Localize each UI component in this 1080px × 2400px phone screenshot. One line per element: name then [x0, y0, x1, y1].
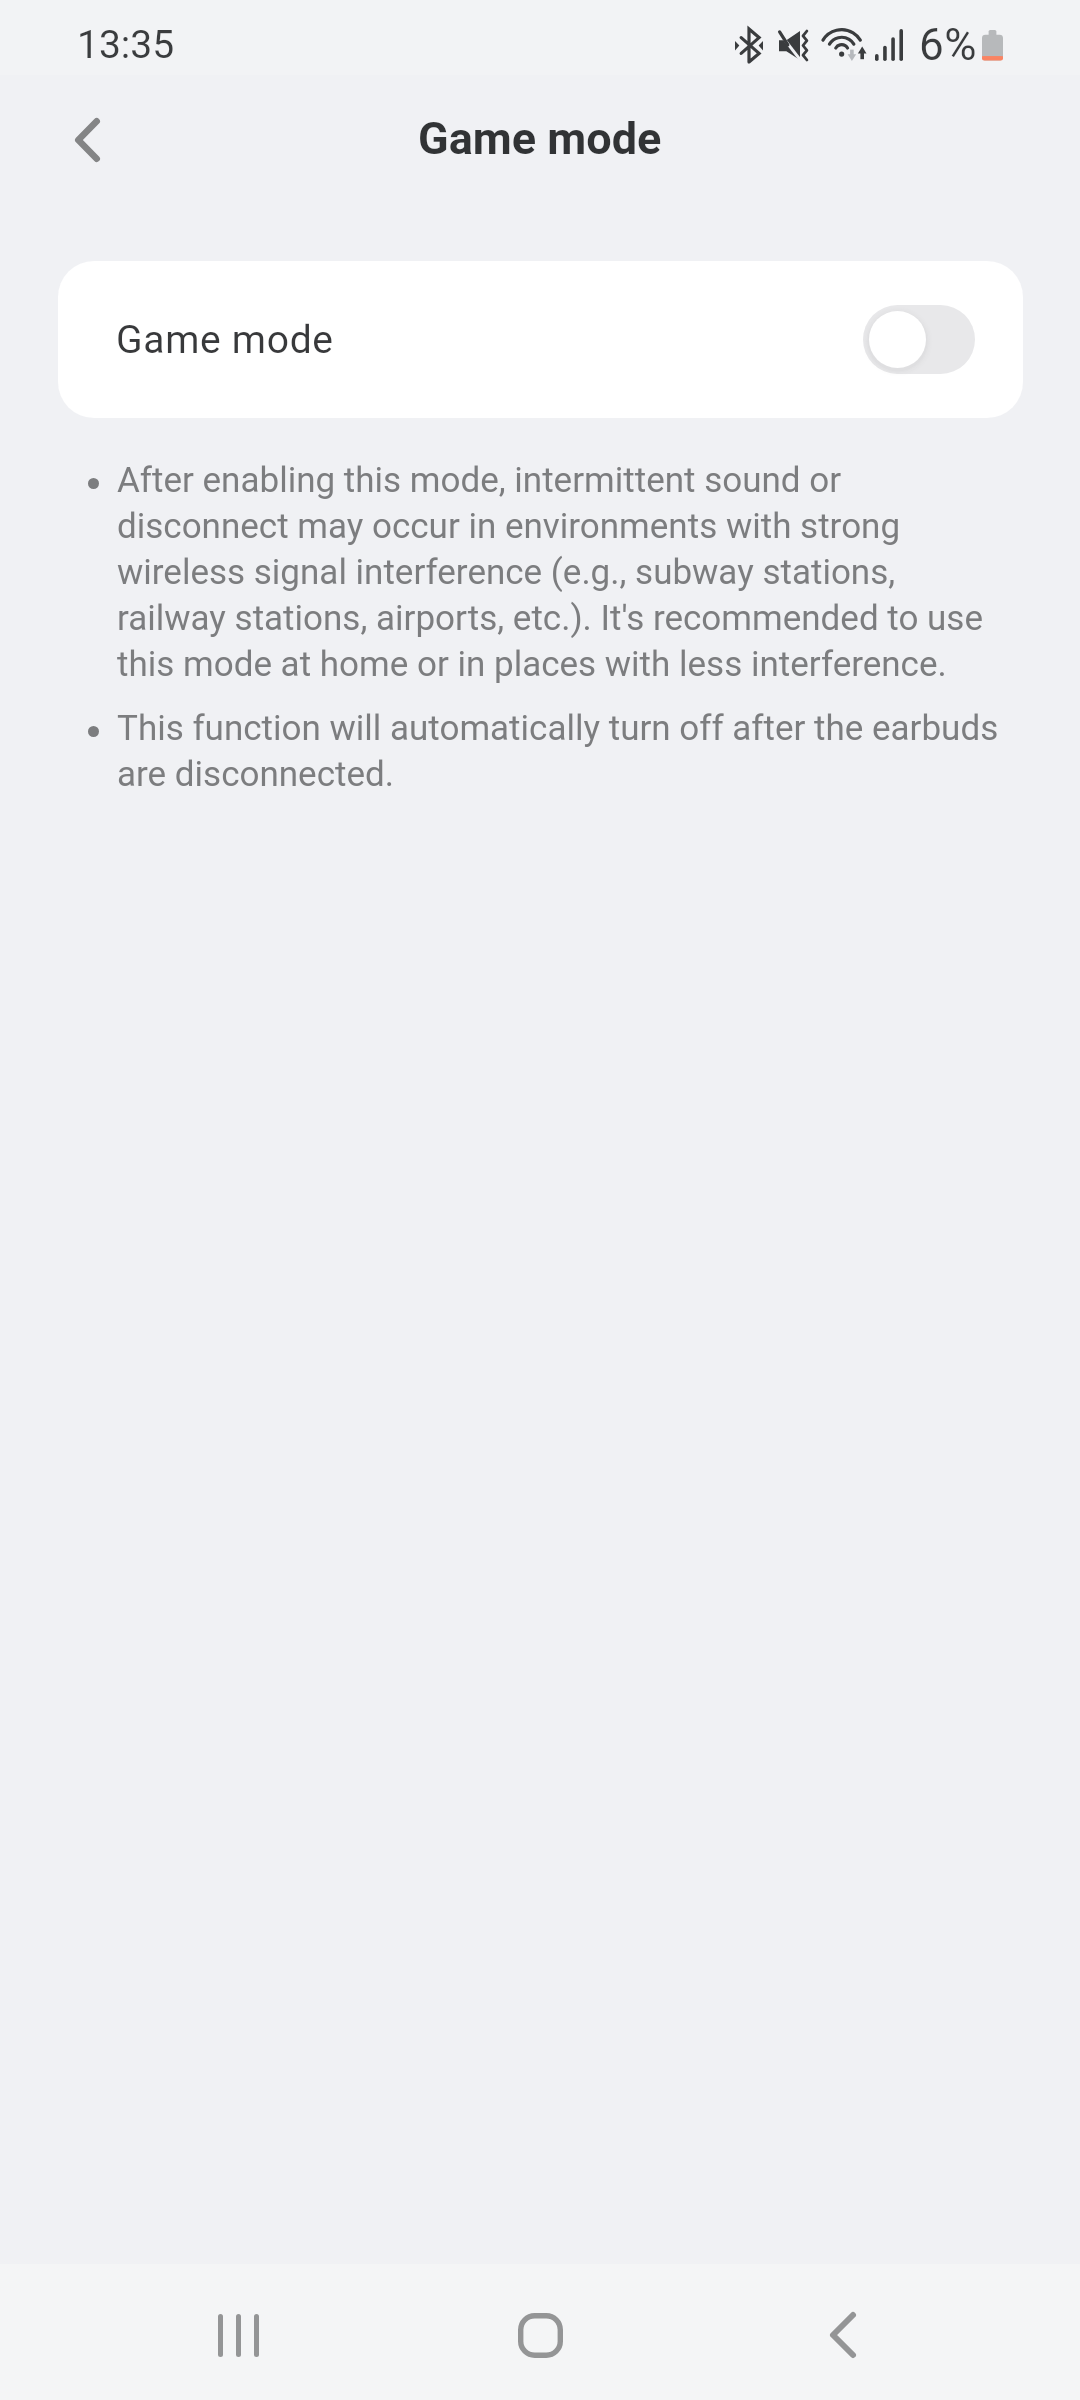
- staticText: 13:35: [77, 22, 175, 68]
- button[interactable]: Recent apps: [163, 2280, 313, 2390]
- staticText: 6%: [919, 19, 978, 71]
- button[interactable]: Back: [768, 2280, 918, 2390]
- staticText: Game mode: [116, 317, 334, 363]
- button[interactable]: Game mode: [58, 261, 1023, 418]
- button[interactable]: Game mode toggle, off: [863, 305, 975, 374]
- staticText: After enabling this mode, intermittent s…: [117, 460, 1000, 685]
- staticText: This function will automatically turn of…: [117, 708, 1000, 795]
- button[interactable]: Home: [465, 2280, 615, 2390]
- staticText: Game mode: [418, 112, 662, 165]
- button[interactable]: Navigate up: [39, 92, 135, 188]
